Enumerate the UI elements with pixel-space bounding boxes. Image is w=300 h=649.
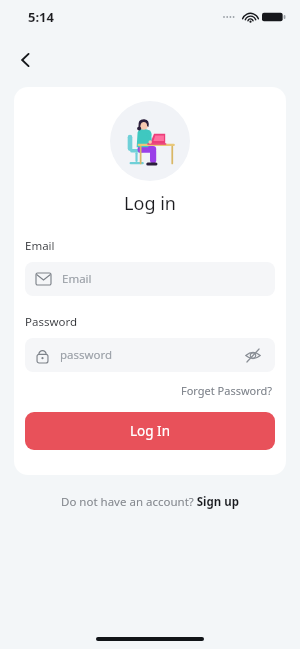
button[interactable]: password — [25, 338, 275, 372]
button[interactable]: Forget Password? — [179, 381, 275, 400]
button[interactable]: Email — [25, 262, 275, 296]
button[interactable]: Back — [6, 40, 46, 80]
button[interactable]: Log In — [25, 412, 275, 450]
staticText: Forget Password? — [181, 383, 273, 398]
staticText: Email — [62, 271, 264, 287]
staticText: Log in — [25, 191, 275, 216]
staticText: Do not have an account? Sign up — [61, 494, 240, 510]
staticText: 5:14 — [28, 8, 54, 26]
staticText: Password — [25, 314, 78, 330]
staticText: Log In — [130, 422, 170, 440]
button[interactable]: Do not have an account? Sign up — [57, 491, 244, 513]
staticText: password — [60, 347, 242, 363]
staticText: Email — [25, 238, 55, 254]
button[interactable]: Show password — [242, 344, 264, 366]
